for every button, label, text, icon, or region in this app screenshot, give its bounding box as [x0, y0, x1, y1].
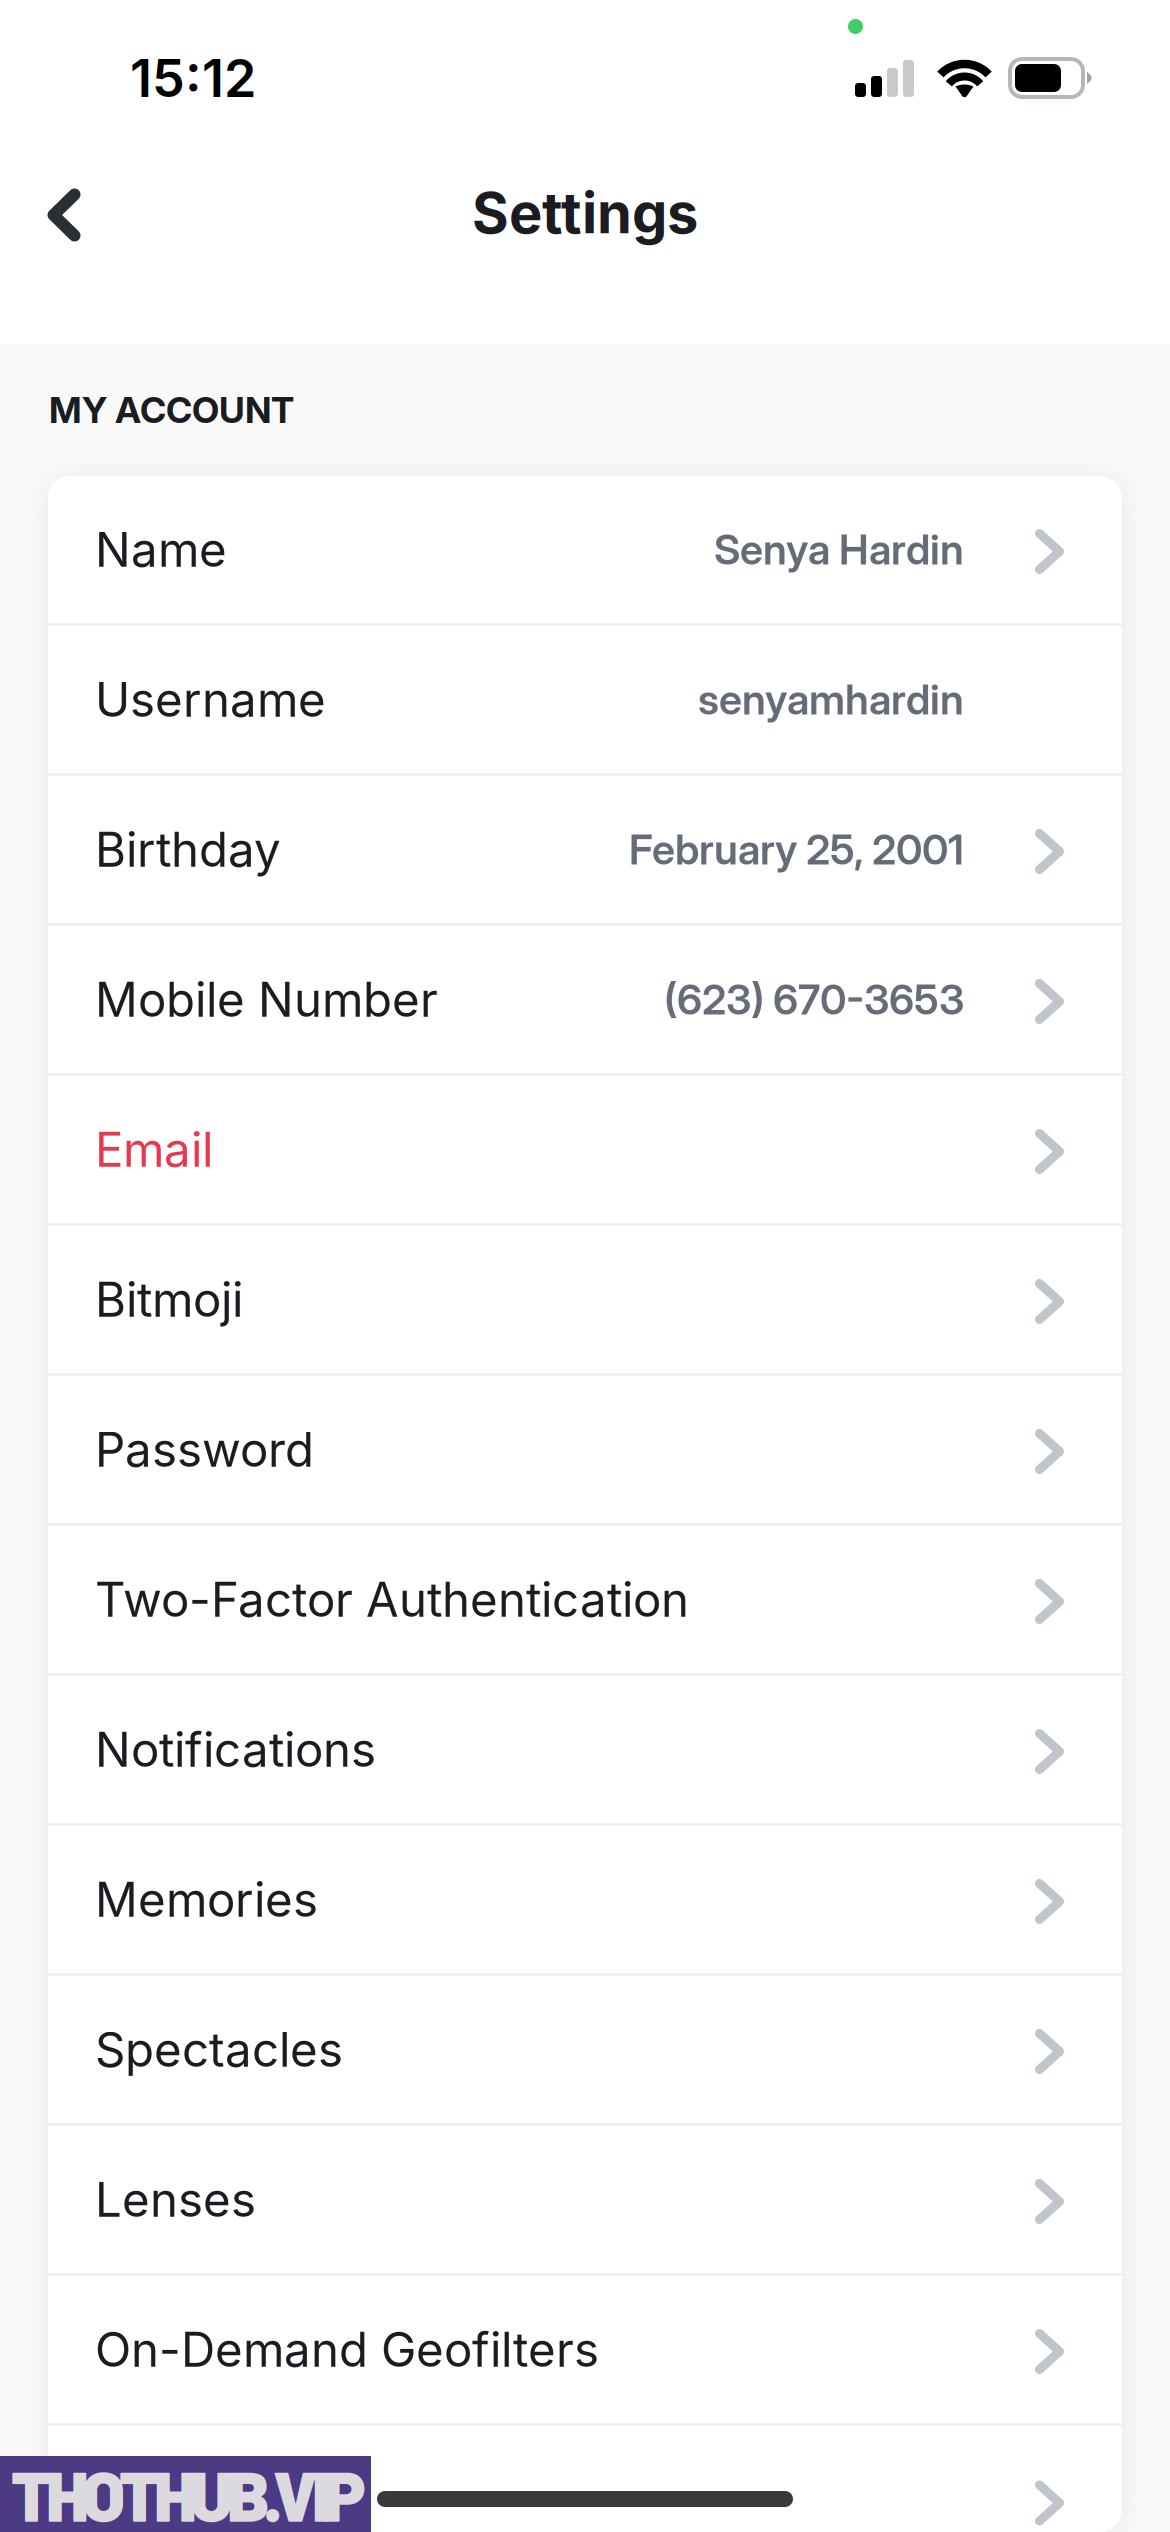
button[interactable]: Shazam: [48, 2426, 1122, 2532]
staticText: Memories: [95, 1871, 318, 1928]
button[interactable]: Password: [48, 1376, 1122, 1526]
button[interactable]: Birthday: [48, 776, 1122, 926]
button[interactable]: Two-Factor Authentication: [48, 1526, 1122, 1676]
staticText: senyamhardin: [698, 674, 964, 724]
button[interactable]: Bitmoji: [48, 1226, 1122, 1376]
button[interactable]: Mobile Number: [48, 926, 1122, 1076]
staticText: Lenses: [95, 2171, 256, 2228]
staticText: THOTHUB.VIP: [11, 2452, 366, 2532]
button[interactable]: Username: [48, 626, 1122, 776]
button[interactable]: Notifications: [48, 1676, 1122, 1826]
staticText: Username: [95, 671, 326, 728]
button[interactable]: Spectacles: [48, 1976, 1122, 2126]
staticText: February 25, 2001: [629, 824, 964, 874]
staticText: 15:12: [130, 46, 256, 109]
staticText: Two-Factor Authentication: [95, 1571, 689, 1628]
button[interactable]: Name: [48, 476, 1122, 626]
staticText: Password: [95, 1421, 314, 1478]
staticText: Name: [95, 521, 227, 578]
staticText: Bitmoji: [95, 1271, 243, 1328]
button[interactable]: Memories: [48, 1826, 1122, 1976]
button[interactable]: Email: [48, 1076, 1122, 1226]
staticText: Shazam: [95, 2472, 274, 2530]
staticText: Settings: [472, 179, 698, 247]
staticText: Mobile Number: [95, 971, 438, 1028]
staticText: Birthday: [95, 821, 281, 878]
button[interactable]: Lenses: [48, 2126, 1122, 2276]
staticText: Email: [95, 1121, 213, 1178]
staticText: (623) 670-3653: [664, 974, 964, 1024]
staticText: On-Demand Geofilters: [95, 2321, 599, 2378]
button[interactable]: Back: [0, 162, 128, 268]
staticText: Senya Hardin: [714, 524, 964, 574]
staticText: Spectacles: [95, 2021, 343, 2078]
staticText: MY ACCOUNT: [49, 388, 294, 432]
button[interactable]: On-Demand Geofilters: [48, 2276, 1122, 2426]
staticText: Notifications: [95, 1721, 376, 1778]
